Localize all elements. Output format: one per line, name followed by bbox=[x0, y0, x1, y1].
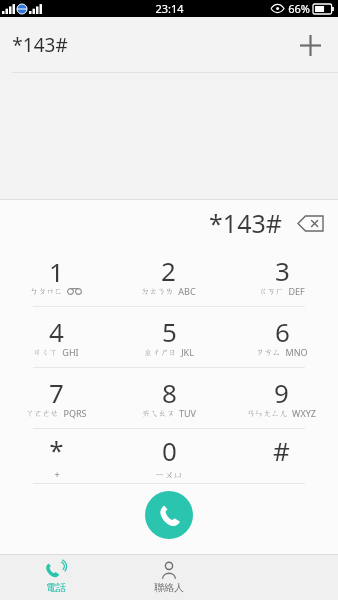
staticText: TUV bbox=[179, 407, 196, 419]
staticText: ㄚㄛㄜㄝ bbox=[26, 408, 59, 418]
button[interactable]: 9 bbox=[225, 368, 338, 428]
staticText: * bbox=[49, 432, 64, 467]
button[interactable]: * bbox=[0, 429, 112, 483]
staticText: 9 bbox=[274, 375, 289, 410]
button[interactable]: 3 bbox=[225, 246, 338, 306]
button[interactable]: 1 bbox=[0, 246, 112, 306]
button[interactable]: 4 bbox=[0, 307, 112, 367]
staticText: ㄢㄣㄤㄥㄦ bbox=[247, 408, 288, 418]
staticText: ㄓㄔㄕㄖ bbox=[144, 347, 177, 357]
staticText: 電話 bbox=[46, 581, 66, 594]
staticText: 7 bbox=[49, 375, 64, 410]
button[interactable]: 聯絡人 bbox=[112, 555, 225, 600]
staticText: # bbox=[273, 433, 290, 468]
staticText: 2 bbox=[161, 253, 176, 288]
staticText: 0 bbox=[162, 433, 177, 468]
staticText: 66% bbox=[288, 1, 310, 16]
staticText: 3 bbox=[275, 253, 290, 288]
staticText: ㄐㄑㄒ bbox=[33, 347, 58, 357]
button[interactable]: 6 bbox=[225, 307, 338, 367]
staticText: 聯絡人 bbox=[154, 581, 184, 594]
staticText: 8 bbox=[162, 375, 177, 410]
staticText: 4 bbox=[49, 314, 64, 349]
staticText: DEF bbox=[288, 285, 305, 297]
button[interactable]: Backspace bbox=[290, 206, 330, 240]
button[interactable]: 電話 bbox=[0, 555, 112, 600]
staticText: 6 bbox=[275, 314, 290, 349]
staticText: PQRS bbox=[63, 407, 87, 419]
staticText: ㄅㄆㄇㄈ bbox=[30, 286, 63, 296]
staticText: ㄍㄎㄏ bbox=[259, 286, 284, 296]
button[interactable]: Add bbox=[292, 27, 328, 63]
staticText: ㄉㄊㄋㄌ bbox=[141, 286, 174, 296]
staticText: 5 bbox=[162, 314, 177, 349]
staticText: ABC bbox=[178, 285, 196, 297]
button[interactable]: # bbox=[225, 429, 338, 483]
staticText: WXYZ bbox=[292, 407, 316, 419]
staticText: ㄗㄘㄙ bbox=[256, 347, 281, 357]
button[interactable]: 2 bbox=[112, 246, 225, 306]
staticText: 1 bbox=[49, 254, 64, 289]
button[interactable]: 0 bbox=[112, 429, 225, 483]
button[interactable]: 8 bbox=[112, 368, 225, 428]
button[interactable]: 7 bbox=[0, 368, 112, 428]
staticText: *143# bbox=[12, 32, 68, 58]
staticText: + bbox=[54, 468, 60, 480]
staticText: JKL bbox=[181, 346, 194, 358]
staticText: *143# bbox=[209, 206, 282, 240]
staticText: MNO bbox=[285, 346, 308, 358]
staticText: GHI bbox=[62, 346, 79, 358]
button[interactable]: 5 bbox=[112, 307, 225, 367]
staticText: ㄞㄟㄠㄡ bbox=[142, 408, 175, 418]
button[interactable]: Call bbox=[145, 491, 193, 539]
staticText: ㄧㄨㄩ bbox=[155, 469, 183, 480]
staticText: 23:14 bbox=[155, 1, 184, 16]
